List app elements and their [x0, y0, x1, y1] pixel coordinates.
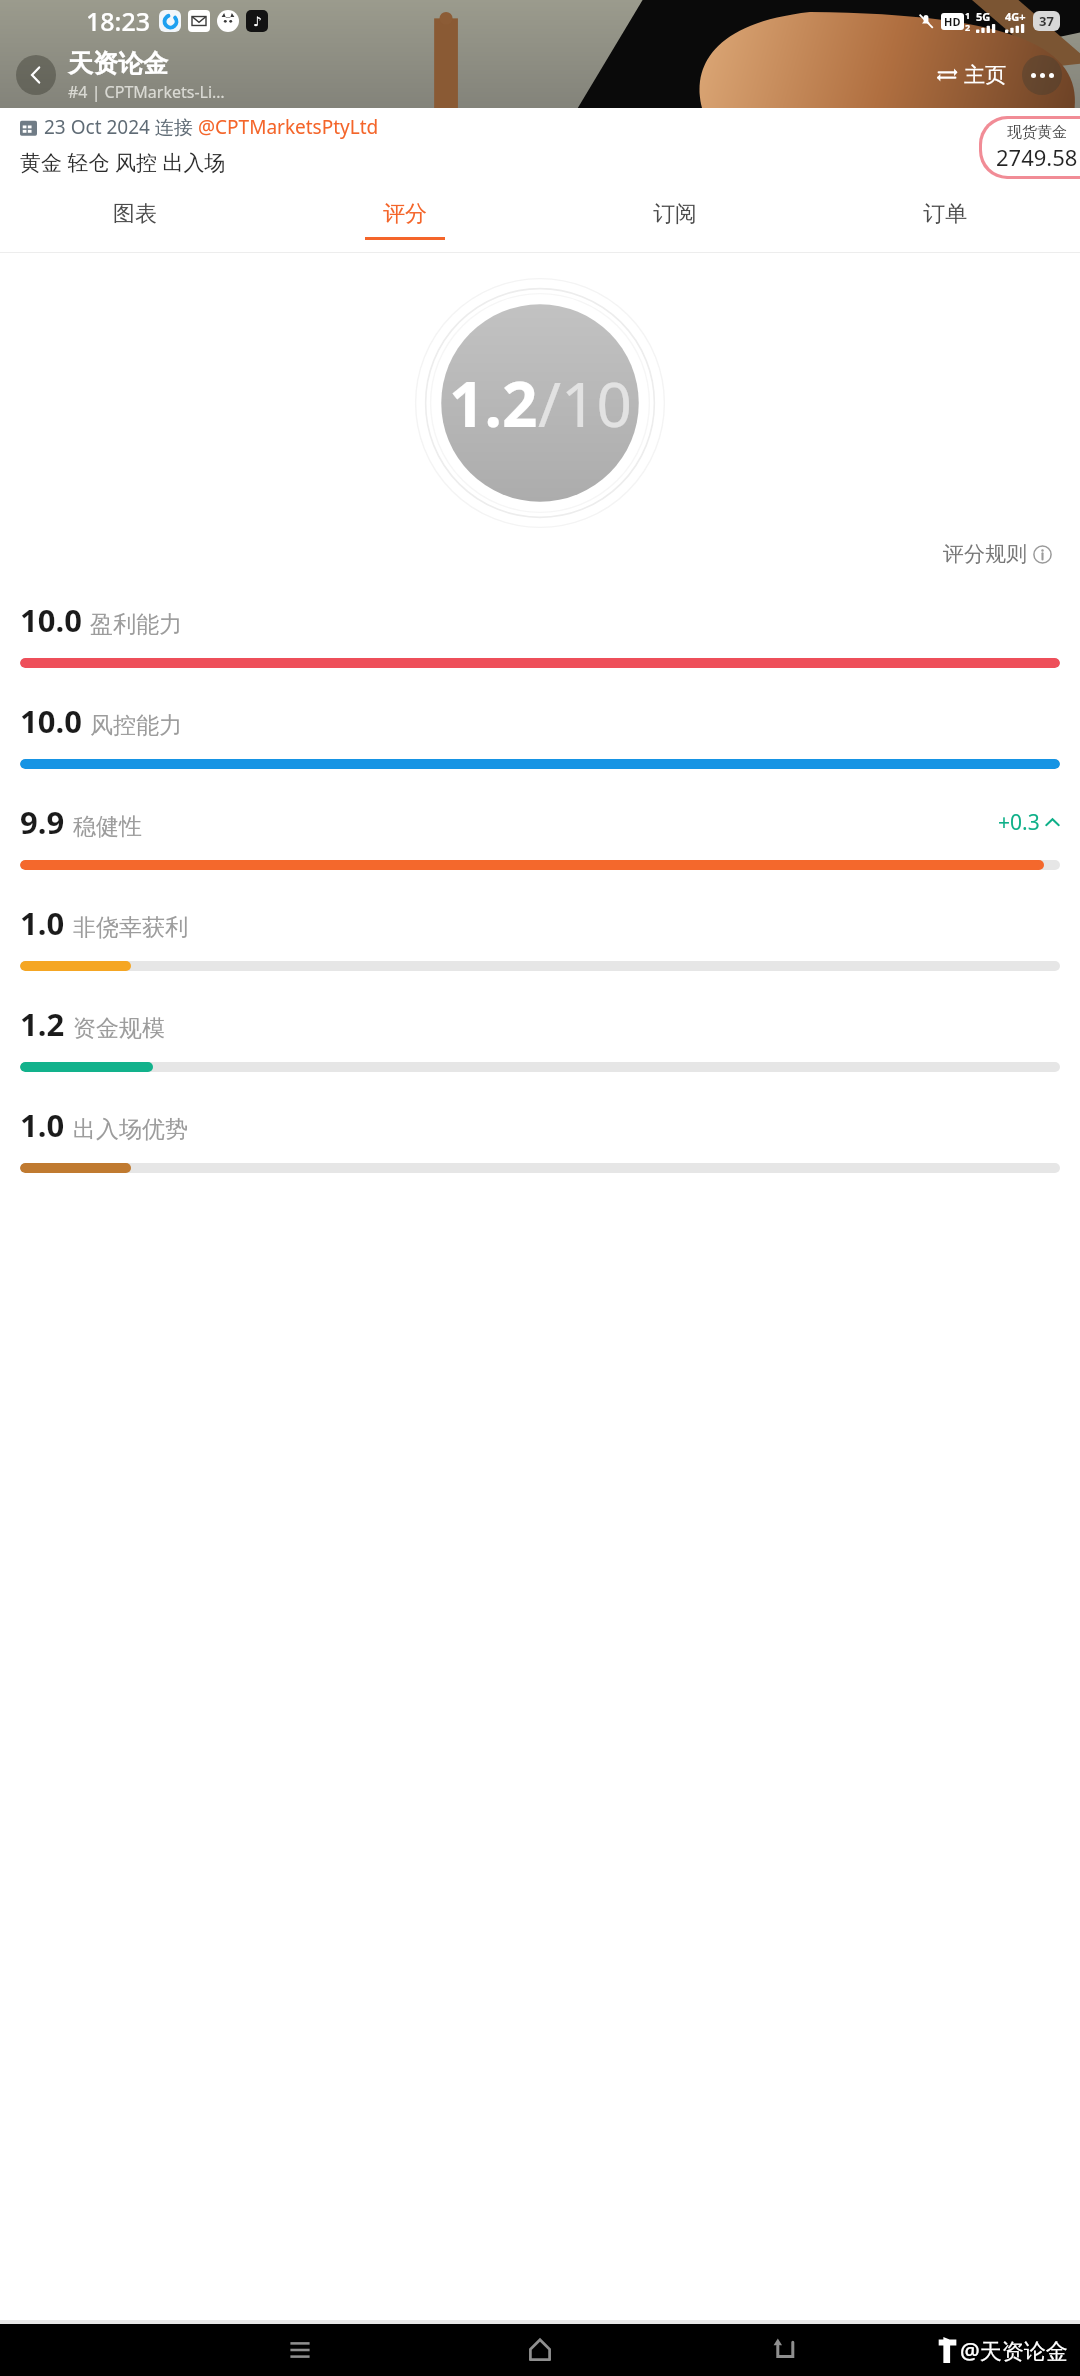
- staticText: 2749.58: [996, 142, 1078, 172]
- staticText: 黄金 轻仓 风控 出入场: [20, 148, 226, 177]
- staticText: 18:23: [86, 4, 151, 38]
- staticText: 主页: [964, 62, 1006, 88]
- button[interactable]: 9.9: [0, 787, 1080, 888]
- staticText: 资金规模: [73, 1014, 165, 1043]
- button[interactable]: Recent apps: [230, 2324, 370, 2376]
- button[interactable]: Home: [470, 2324, 610, 2376]
- staticText: 10.0: [20, 599, 82, 641]
- staticText: ♪: [253, 14, 262, 29]
- staticText: @天资论金: [960, 2335, 1068, 2365]
- staticText: @CPTMarketsPtyLtd: [198, 114, 379, 140]
- staticText: 订单: [923, 200, 967, 228]
- button[interactable]: 1.0: [0, 888, 1080, 989]
- button[interactable]: 现货黄金: [996, 123, 1078, 172]
- staticText: 评分规则: [943, 541, 1027, 567]
- staticText: +0.3: [998, 808, 1040, 837]
- staticText: 1.2: [20, 1003, 65, 1045]
- staticText: 现货黄金: [1007, 123, 1067, 142]
- staticText: 出入场优势: [73, 1115, 188, 1144]
- staticText: 37: [1039, 12, 1054, 30]
- staticText: 1: [965, 9, 971, 21]
- button[interactable]: 1.0: [0, 1090, 1080, 1191]
- staticText: 评分: [383, 200, 427, 228]
- staticText: 2: [965, 21, 971, 33]
- staticText: 盈利能力: [90, 610, 182, 639]
- button[interactable]: 10.0: [0, 585, 1080, 686]
- button[interactable]: 订单: [810, 188, 1080, 252]
- button[interactable]: 评分规则: [939, 537, 1056, 571]
- staticText: 图表: [113, 200, 157, 228]
- button[interactable]: 图表: [0, 188, 270, 252]
- staticText: 5G: [976, 9, 991, 24]
- staticText: 4G+: [1005, 9, 1026, 24]
- button[interactable]: 10.0: [0, 686, 1080, 787]
- staticText: 风控能力: [90, 711, 182, 740]
- staticText: 1.0: [20, 902, 65, 944]
- button[interactable]: More options: [1022, 55, 1062, 95]
- button[interactable]: 评分: [270, 188, 540, 252]
- staticText: 1.0: [20, 1104, 65, 1146]
- staticText: 23 Oct 2024 连接: [44, 114, 198, 140]
- staticText: 10.0: [20, 700, 82, 742]
- staticText: 订阅: [653, 200, 697, 228]
- staticText: 9.9: [20, 801, 65, 843]
- button[interactable]: 主页: [932, 58, 1010, 92]
- staticText: /10: [538, 361, 632, 445]
- button[interactable]: Back: [16, 55, 56, 95]
- button[interactable]: 1.2: [0, 989, 1080, 1090]
- staticText: 非侥幸获利: [73, 913, 188, 942]
- staticText: 天资论金: [68, 48, 168, 79]
- button[interactable]: 订阅: [540, 188, 810, 252]
- staticText: 稳健性: [73, 812, 142, 841]
- staticText: #4 | CPTMarkets-Li…: [68, 81, 225, 103]
- staticText: HD: [944, 14, 961, 29]
- button[interactable]: 天资论金: [68, 48, 225, 103]
- button[interactable]: Back: [720, 2324, 850, 2376]
- staticText: 1.2: [449, 361, 538, 445]
